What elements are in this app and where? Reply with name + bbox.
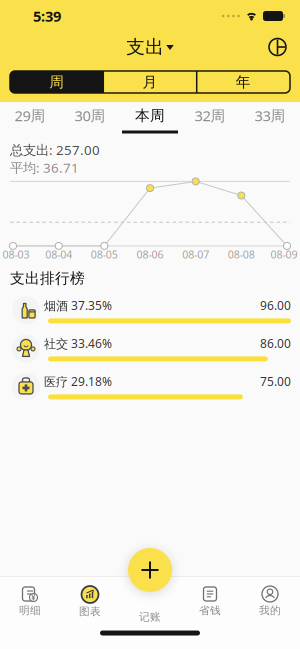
button[interactable]: [269, 38, 286, 55]
staticText: 08-07: [182, 247, 209, 261]
staticText: 平均: 36.71: [10, 159, 79, 176]
staticText: 30周: [74, 106, 105, 125]
staticText: 年: [236, 73, 251, 91]
staticText: 记账: [139, 610, 161, 623]
button[interactable]: 记账: [120, 586, 180, 628]
staticText: 5:39: [33, 6, 61, 26]
staticText: 96.00: [260, 297, 291, 313]
button[interactable]: 我的: [240, 586, 300, 628]
staticText: 医疗 29.18%: [44, 373, 112, 389]
button[interactable]: 医疗 29.18%: [0, 367, 300, 405]
button[interactable]: 32周: [180, 102, 240, 134]
staticText: 明细: [19, 604, 41, 617]
button[interactable]: 33周: [240, 102, 300, 134]
staticText: 月: [142, 73, 157, 91]
staticText: 烟酒 37.35%: [44, 297, 112, 313]
button[interactable]: 社交 33.46%: [0, 329, 300, 367]
button[interactable]: 年: [197, 71, 290, 93]
staticText: 省钱: [199, 604, 221, 617]
staticText: 支出排行榜: [10, 269, 85, 287]
staticText: 86.00: [260, 335, 291, 351]
button[interactable]: 支出: [126, 35, 174, 58]
staticText: 33周: [254, 106, 285, 125]
staticText: 32周: [194, 106, 225, 125]
button[interactable]: 本周: [120, 102, 180, 134]
button[interactable]: 周: [10, 71, 103, 93]
button[interactable]: ¥: [0, 586, 60, 628]
button[interactable]: 29周: [0, 102, 60, 134]
button[interactable]: 30周: [60, 102, 120, 134]
staticText: 社交 33.46%: [44, 335, 112, 351]
staticText: 周: [49, 73, 64, 91]
staticText: 08-04: [45, 247, 72, 261]
staticText: 29周: [14, 106, 45, 125]
staticText: 08-03: [2, 247, 29, 261]
staticText: 本周: [135, 106, 165, 124]
button[interactable]: [128, 548, 172, 592]
staticText: 75.00: [260, 373, 291, 389]
staticText: 08-08: [228, 247, 255, 261]
button[interactable]: 烟酒 37.35%: [0, 291, 300, 329]
staticText: 图表: [79, 605, 101, 618]
button[interactable]: 月: [103, 71, 197, 93]
button[interactable]: 省钱: [180, 586, 240, 628]
staticText: ¥: [31, 592, 36, 603]
staticText: 08-06: [136, 247, 163, 261]
staticText: 支出: [126, 35, 164, 58]
staticText: 总支出: 257.00: [10, 141, 100, 159]
staticText: 08-09: [270, 247, 297, 261]
staticText: 我的: [259, 604, 281, 617]
staticText: 08-05: [91, 247, 118, 261]
button[interactable]: 图表: [60, 586, 120, 628]
